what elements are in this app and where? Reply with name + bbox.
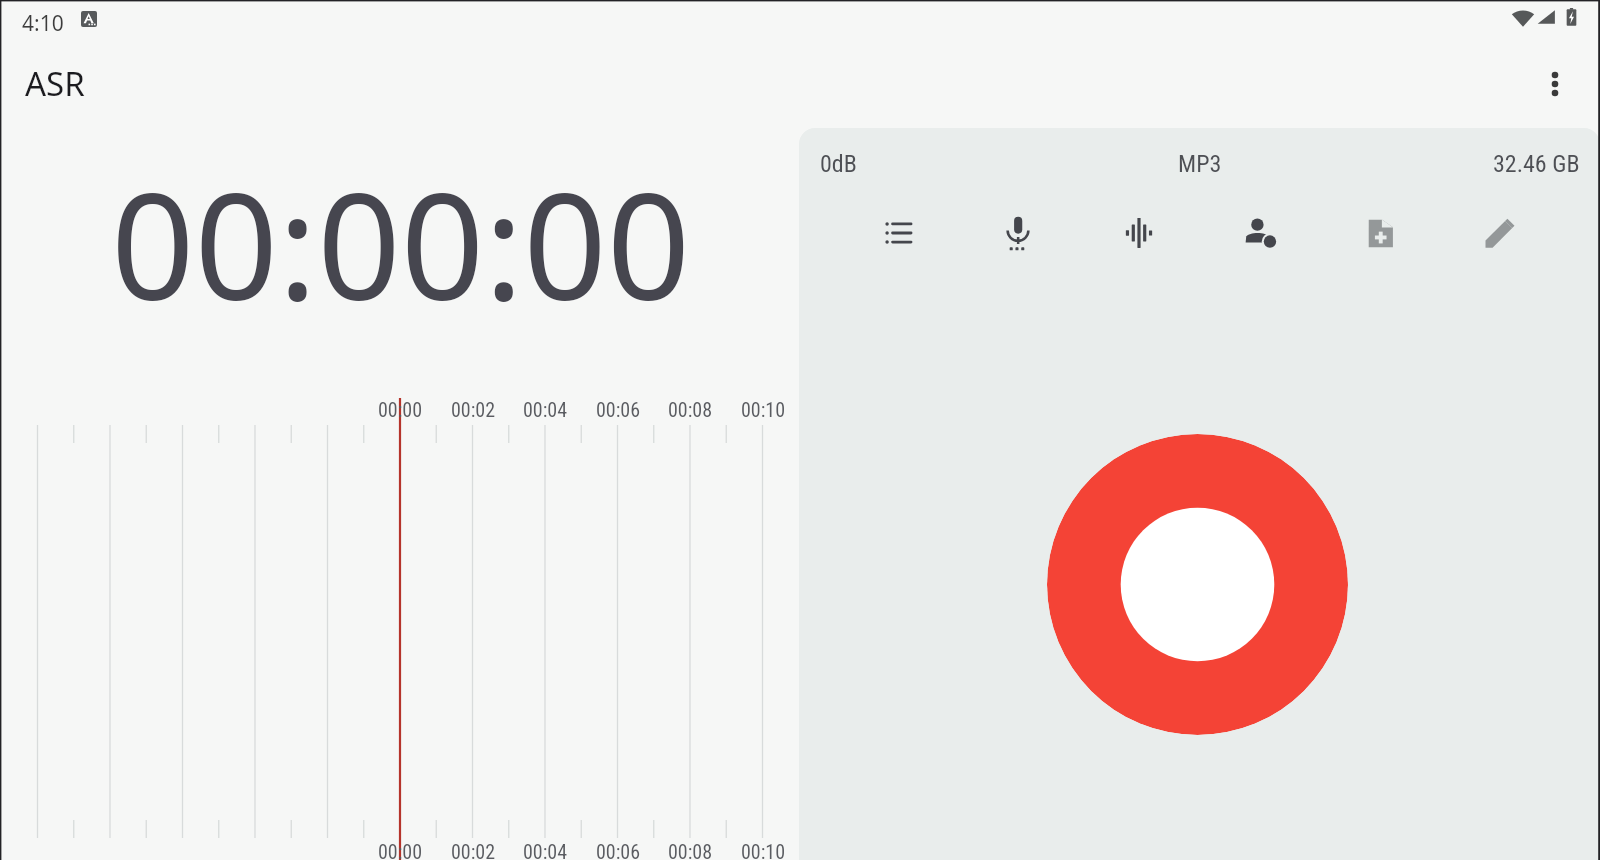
staticText: 32.46 GB bbox=[1493, 150, 1580, 178]
staticText: 00:02 bbox=[428, 398, 518, 421]
button[interactable]: More options bbox=[1525, 54, 1585, 114]
staticText: 00:06 bbox=[573, 398, 663, 421]
staticText: 00:10 bbox=[718, 398, 808, 421]
staticText: 00:04 bbox=[500, 840, 590, 860]
button[interactable]: Record bbox=[1047, 434, 1348, 735]
button[interactable]: Waveform bbox=[1109, 203, 1169, 263]
staticText: 00:00 bbox=[355, 398, 445, 421]
button[interactable]: List bbox=[869, 203, 929, 263]
button[interactable]: Edit bbox=[1470, 203, 1530, 263]
staticText: 00:02 bbox=[428, 840, 518, 860]
staticText: 00:08 bbox=[645, 398, 735, 421]
staticText: ASR bbox=[25, 61, 85, 106]
staticText: 0dB bbox=[820, 150, 857, 178]
button[interactable]: New file bbox=[1350, 203, 1410, 263]
staticText: 00:08 bbox=[645, 840, 735, 860]
staticText: 4:10 bbox=[22, 9, 64, 38]
staticText: 00:04 bbox=[500, 398, 590, 421]
staticText: 00:10 bbox=[718, 840, 808, 860]
button[interactable]: Record mode bbox=[988, 203, 1048, 263]
button[interactable]: Recording timeline bbox=[0, 396, 800, 860]
staticText: 00:00 bbox=[355, 840, 445, 860]
staticText: 00:06 bbox=[573, 840, 663, 860]
staticText: 00:00:00 bbox=[111, 144, 691, 343]
button[interactable]: Add speaker bbox=[1230, 203, 1290, 263]
staticText: MP3 bbox=[1178, 150, 1222, 178]
